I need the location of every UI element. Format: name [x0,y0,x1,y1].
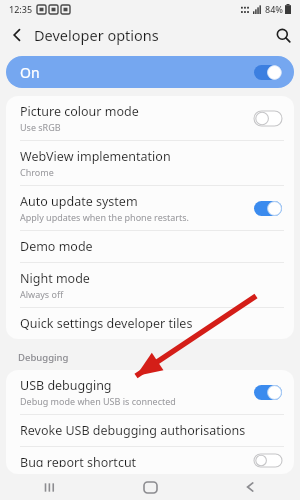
staticText: USB debugging [20,377,112,394]
button[interactable]: Back [0,18,34,52]
button[interactable]: Quick settings developer tiles [6,308,294,339]
button[interactable]: Back [220,474,280,500]
button[interactable]: On [6,56,294,88]
staticText: Night mode [20,270,90,287]
staticText: WebView implementation [20,148,171,165]
button[interactable]: Revoke USB debugging authorisations [6,415,294,446]
button[interactable]: WebView implementation [6,141,294,185]
button[interactable]: Night mode [6,263,294,307]
staticText: Use sRGB [20,121,61,133]
staticText: Revoke USB debugging authorisations [20,422,246,439]
staticText: Debug mode when USB is connected [20,395,176,407]
button[interactable]: Picture colour mode [6,96,294,140]
staticText: Chrome [20,166,54,178]
button[interactable]: Demo mode [6,231,294,262]
button[interactable]: Auto update system [6,186,294,230]
staticText: Picture colour mode [20,103,139,120]
staticText: 12:35 [9,3,33,15]
button[interactable]: Recent apps [20,474,80,500]
button[interactable]: Search [266,18,300,52]
staticText: Quick settings developer tiles [20,315,193,332]
staticText: Bug report shortcut [20,454,137,467]
staticText: 84% [265,3,283,15]
staticText: On [20,63,40,82]
staticText: Demo mode [20,238,93,255]
staticText: Developer options [34,25,159,45]
button[interactable]: Bug report shortcut [6,447,294,474]
button[interactable]: USB debugging [6,370,294,414]
button[interactable]: Home [120,474,180,500]
staticText: Always off [20,288,64,300]
staticText: Debugging [18,351,69,364]
staticText: Apply updates when the phone restarts. [20,211,190,223]
staticText: Auto update system [20,193,138,210]
